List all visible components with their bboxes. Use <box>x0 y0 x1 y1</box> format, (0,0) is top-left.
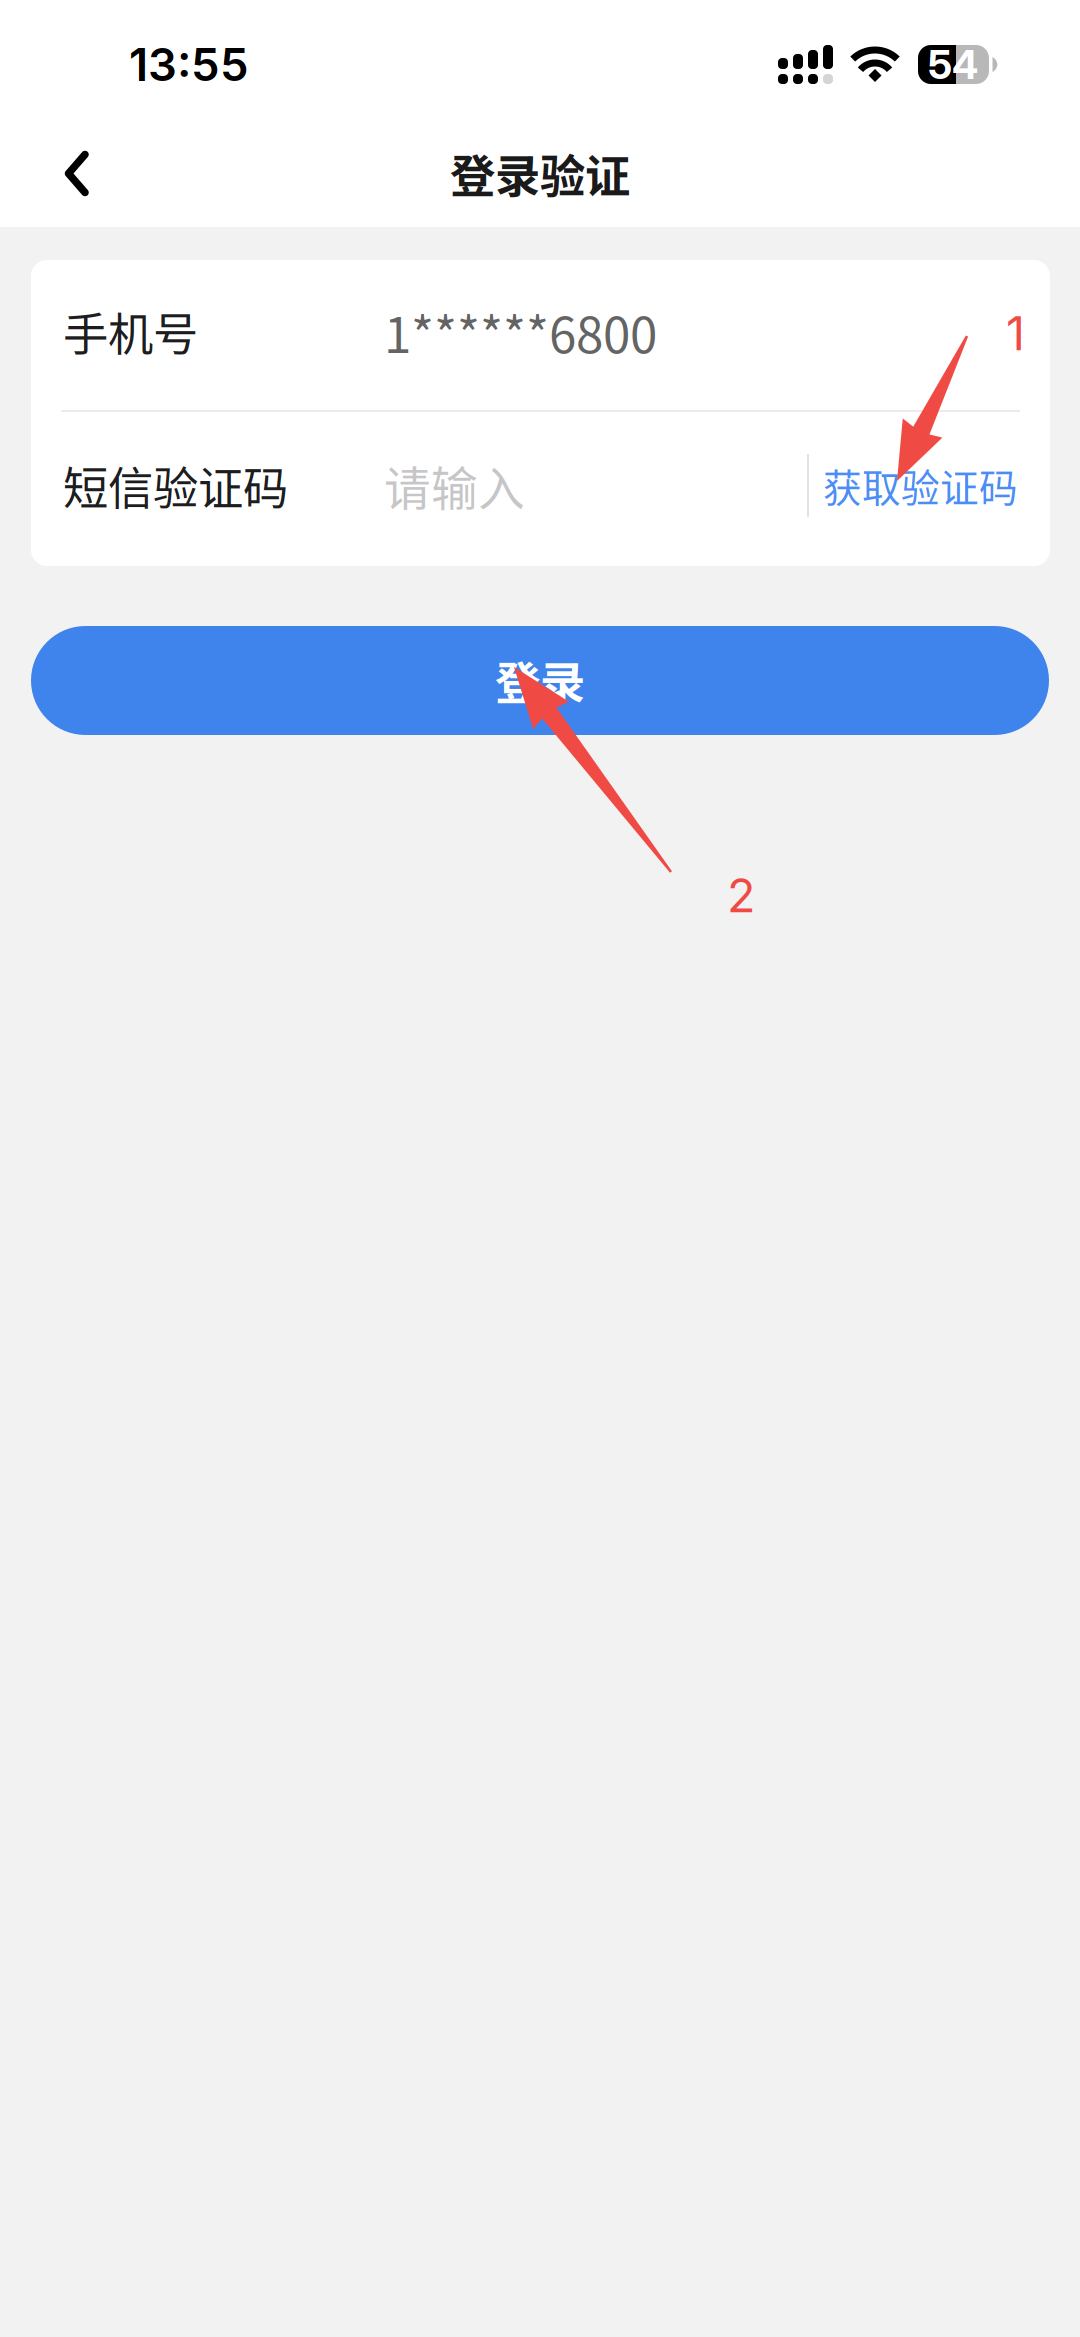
staticText: 1 <box>1006 305 1025 361</box>
staticText: 1******6800 <box>384 296 657 367</box>
staticText: 获取验证码 <box>823 457 1018 513</box>
staticText: 手机号 <box>63 299 198 364</box>
staticText: 请输入 <box>384 452 525 519</box>
button[interactable]: 获取验证码 <box>807 454 1018 517</box>
staticText: 2 <box>727 867 755 923</box>
staticText: 13:55 <box>129 37 249 92</box>
staticText: 54 <box>928 40 978 89</box>
button[interactable]: Back <box>31 127 123 219</box>
button[interactable]: 登录 <box>31 626 1049 735</box>
staticText: 登录验证 <box>450 141 630 206</box>
staticText: 登录 <box>495 648 585 713</box>
staticText: 短信验证码 <box>63 453 288 518</box>
